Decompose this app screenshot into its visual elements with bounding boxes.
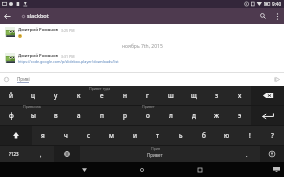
button[interactable]: Backspace [251, 86, 284, 105]
button[interactable]: Navigate up [0, 8, 15, 24]
button[interactable]: ф [0, 106, 22, 125]
staticText: Привет туда [89, 86, 111, 91]
staticText: 3:31 PM [61, 54, 75, 59]
staticText: ы [31, 111, 36, 120]
staticText: г [146, 91, 149, 100]
staticText: р [123, 111, 127, 120]
staticText: в [54, 111, 58, 120]
staticText: Привычка [23, 104, 41, 109]
button[interactable]: г [136, 86, 159, 105]
button[interactable]: More options [271, 8, 284, 24]
button[interactable]: Add emoji [0, 73, 12, 86]
button[interactable]: н [113, 86, 136, 105]
button[interactable]: Привет [80, 146, 234, 162]
staticText: ж [214, 111, 219, 120]
button[interactable]: , [27, 146, 54, 162]
staticText: п [100, 111, 104, 120]
button[interactable]: х [228, 86, 251, 105]
button[interactable]: ч [54, 126, 77, 145]
button[interactable]: р [113, 106, 136, 125]
staticText: щ [191, 91, 197, 100]
button[interactable]: Enter [251, 106, 284, 125]
button[interactable]: ь [169, 126, 192, 145]
staticText: , [40, 151, 42, 158]
button[interactable]: Send [269, 73, 284, 86]
button[interactable]: б [192, 126, 215, 145]
button[interactable]: Change language [54, 146, 80, 162]
staticText: н [123, 91, 127, 100]
button[interactable]: ж [205, 106, 228, 125]
button[interactable]: . [234, 146, 260, 162]
staticText: Дмитрий Романов [18, 27, 59, 33]
button[interactable]: а [67, 106, 90, 125]
button[interactable]: ! [238, 126, 261, 145]
staticText: Привет [147, 152, 163, 158]
staticText: х [238, 91, 242, 100]
button[interactable]: Shift [0, 126, 32, 145]
staticText: ц [31, 91, 35, 100]
button[interactable]: ш [159, 86, 182, 105]
staticText: б [202, 131, 206, 140]
button[interactable]: ы [22, 106, 44, 125]
button[interactable]: у [44, 86, 67, 105]
button[interactable]: Back [55, 162, 113, 177]
staticText: https://code.google.com/p/slidebox-playe… [18, 59, 119, 64]
button[interactable]: Search [255, 8, 271, 24]
staticText: . [246, 151, 248, 158]
button[interactable]: д [182, 106, 205, 125]
button[interactable]: о [136, 106, 159, 125]
button[interactable]: з [205, 86, 228, 105]
button[interactable]: э [228, 106, 251, 125]
staticText: й [9, 91, 13, 100]
staticText: 3:25 PM [61, 28, 75, 33]
button[interactable]: е [90, 86, 113, 105]
staticText: а [77, 111, 81, 120]
staticText: ю [224, 131, 230, 140]
staticText: Привет [142, 104, 155, 109]
button[interactable]: ц [22, 86, 44, 105]
button[interactable]: с [77, 126, 100, 145]
staticText: л [169, 111, 173, 120]
staticText: ?123 [9, 151, 19, 157]
staticText: Прив [151, 146, 161, 151]
button[interactable]: Recent apps [171, 162, 229, 177]
staticText: ч [64, 131, 68, 140]
staticText: т [156, 131, 159, 140]
button[interactable]: т [146, 126, 169, 145]
button[interactable]: щ [182, 86, 205, 105]
button[interactable]: и [123, 126, 146, 145]
staticText: ф [9, 111, 14, 120]
staticText: slackbot [27, 12, 49, 20]
staticText: у [54, 91, 58, 100]
button[interactable]: ю [215, 126, 238, 145]
button[interactable]: п [90, 106, 113, 125]
staticText: ь [179, 131, 183, 140]
button[interactable]: к [67, 86, 90, 105]
button[interactable]: ?123 [0, 146, 27, 162]
staticText: с [87, 131, 91, 140]
button[interactable]: Hide keyboard [268, 162, 284, 177]
staticText: 9:40 [272, 1, 282, 7]
button[interactable]: й [0, 86, 22, 105]
button[interactable]: м [100, 126, 123, 145]
staticText: ? [271, 131, 274, 140]
staticText: о [146, 111, 150, 120]
staticText: к [77, 91, 81, 100]
staticText: э [238, 111, 242, 120]
button[interactable]: ? [261, 126, 284, 145]
staticText: ноябрь 7th, 2015 [122, 43, 163, 50]
staticText: я [41, 131, 45, 140]
button[interactable]: в [44, 106, 67, 125]
staticText: Дмитрий Романов [18, 53, 59, 59]
staticText: Приві [17, 76, 30, 82]
button[interactable]: л [159, 106, 182, 125]
staticText: з [215, 91, 219, 100]
staticText: и [133, 131, 137, 140]
staticText: д [192, 111, 196, 120]
button[interactable]: Home [113, 162, 171, 177]
button[interactable]: Voice input [260, 146, 284, 162]
staticText: м [109, 131, 114, 140]
button[interactable]: я [32, 126, 54, 145]
staticText: ш [168, 91, 174, 100]
staticText: е [100, 91, 104, 100]
